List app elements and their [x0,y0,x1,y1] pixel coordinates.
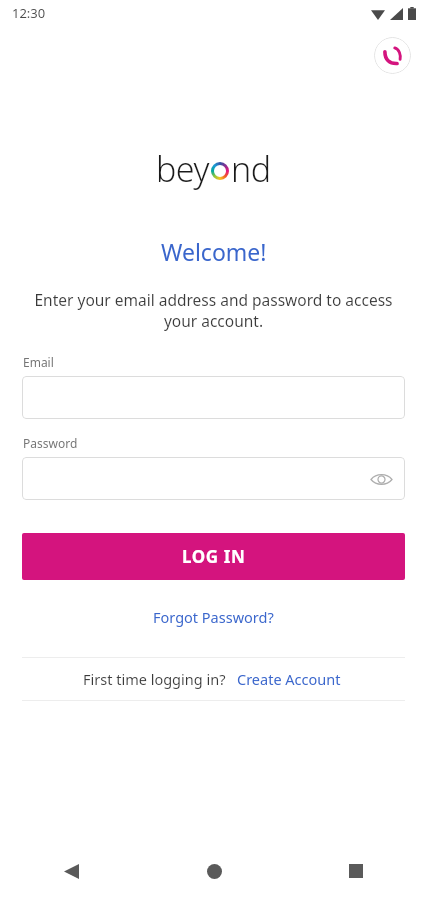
staticText: Password [23,435,78,451]
button[interactable]: Home [143,842,285,900]
button[interactable]: Back [0,842,143,900]
staticText: 12:30 [12,4,46,22]
button[interactable]: Create Account [234,666,344,692]
staticText: LOG IN [182,545,246,568]
staticText: Email [23,354,54,370]
staticText: Enter your email address and password to… [26,289,401,332]
button[interactable]: Show password [365,463,397,495]
staticText: Welcome! [161,236,267,267]
staticText: Forgot Password? [153,607,274,627]
button[interactable]: Call support [374,37,411,74]
button[interactable]: Recent apps [285,842,427,900]
staticText: First time logging in? [83,669,226,689]
staticText: bey [156,146,209,192]
button[interactable]: Show password [22,457,405,500]
button[interactable]: LOG IN [22,533,405,580]
button[interactable] [22,376,405,419]
staticText: nd [231,146,271,192]
button[interactable]: Forgot Password? [147,604,280,630]
staticText: Create Account [237,669,341,689]
